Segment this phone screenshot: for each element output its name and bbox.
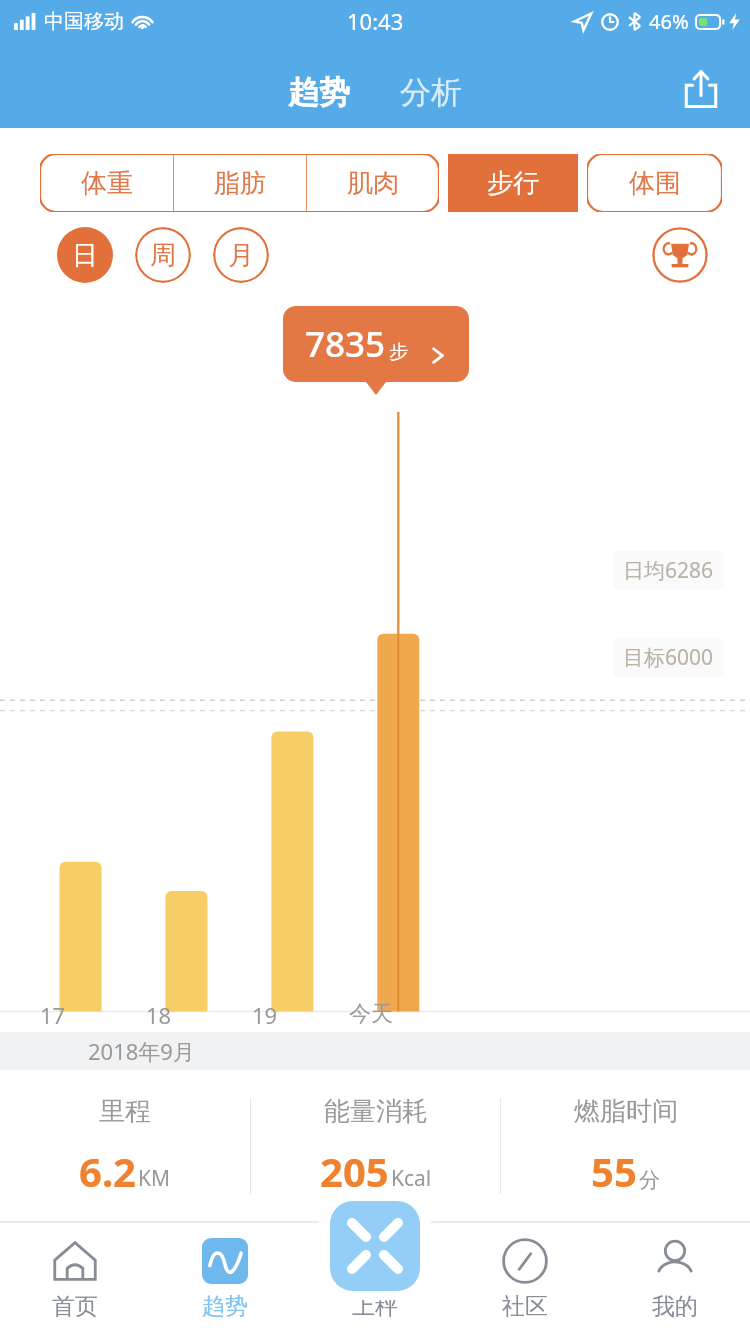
staticText: 分析 (400, 73, 462, 112)
staticText: 分 (639, 1167, 660, 1193)
button[interactable]: 首页 (0, 1222, 150, 1334)
staticText: 目标6000 (623, 643, 714, 672)
staticText: 18 (146, 1000, 172, 1030)
staticText: 趋势 (288, 73, 350, 112)
button[interactable]: 上秤 (300, 1222, 450, 1334)
staticText: 46% (649, 8, 689, 35)
staticText: 205 (320, 1144, 389, 1198)
staticText: 今天 (349, 1000, 393, 1028)
staticText: 体围 (629, 167, 681, 200)
button[interactable]: 分析 (390, 69, 472, 116)
staticText: 肌肉 (347, 167, 399, 200)
staticText: 中国移动 (44, 9, 124, 34)
staticText: 17 (40, 1000, 66, 1030)
button[interactable]: 月 (213, 227, 269, 283)
button[interactable]: 脂肪 (174, 154, 306, 212)
staticText: 步行 (487, 167, 539, 200)
staticText: 里程 (99, 1095, 151, 1128)
button[interactable]: 日 (57, 227, 113, 283)
staticText: 10:43 (347, 6, 404, 36)
button[interactable]: 我的 (600, 1222, 750, 1334)
staticText: 燃脂时间 (574, 1095, 678, 1128)
staticText: 日 (72, 239, 98, 272)
staticText: 步 (389, 340, 408, 364)
staticText: 周 (150, 239, 176, 272)
staticText: 上秤 (352, 1292, 398, 1321)
button[interactable]: 体围 (587, 154, 722, 212)
staticText: 社区 (502, 1292, 548, 1321)
staticText: 能量消耗 (324, 1095, 428, 1128)
button[interactable]: 7835 (283, 306, 469, 382)
staticText: Kcal (391, 1164, 432, 1193)
button[interactable]: 体重 (40, 154, 173, 212)
staticText: 月 (228, 239, 254, 272)
staticText: 首页 (52, 1292, 98, 1321)
button[interactable]: Achievements (652, 227, 708, 283)
staticText: 日均6286 (623, 556, 714, 585)
button[interactable]: 周 (135, 227, 191, 283)
button[interactable]: 能量消耗 (251, 1070, 500, 1222)
button[interactable]: 趋势 (150, 1222, 300, 1334)
staticText: 55 (591, 1144, 637, 1198)
button[interactable]: 肌肉 (307, 154, 439, 212)
staticText: 7835 (305, 320, 386, 368)
staticText: 我的 (652, 1292, 698, 1321)
staticText: KM (138, 1164, 171, 1193)
button[interactable]: 社区 (450, 1222, 600, 1334)
staticText: 19 (252, 1000, 278, 1030)
button[interactable]: 上秤 (330, 1201, 420, 1291)
button[interactable]: 步行 (448, 154, 578, 212)
staticText: 2018年9月 (88, 1036, 195, 1066)
button[interactable]: 趋势 (278, 69, 360, 116)
button[interactable]: 里程 (0, 1070, 250, 1222)
staticText: 脂肪 (214, 167, 266, 200)
button[interactable]: Share (678, 66, 724, 112)
staticText: 体重 (81, 167, 133, 200)
staticText: 趋势 (202, 1292, 248, 1321)
staticText: 6.2 (79, 1144, 136, 1198)
button[interactable]: 燃脂时间 (501, 1070, 750, 1222)
